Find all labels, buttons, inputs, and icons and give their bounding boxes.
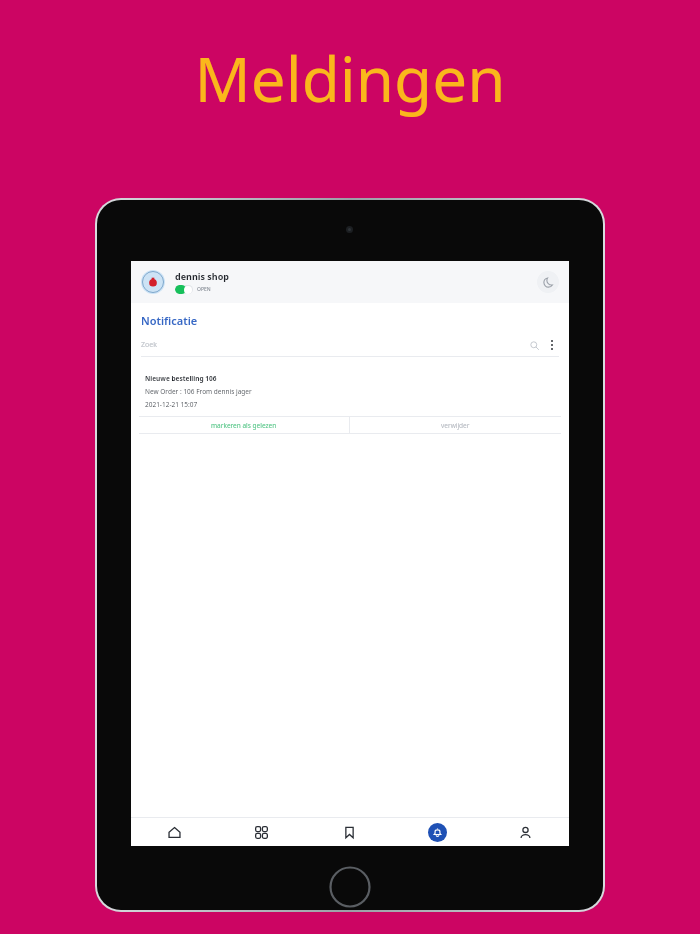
staticText: OPEN [197,286,211,293]
staticText: markeren als gelezen [211,421,277,430]
button[interactable]: More options [545,338,559,352]
button[interactable]: Home [131,818,218,846]
button[interactable]: Notifications [393,818,481,846]
staticText: Notificatie [141,313,198,328]
staticText: Zoek [141,340,157,350]
button[interactable]: Nieuwe bestelling 106 [139,367,561,416]
button[interactable]: verwijder [350,417,561,433]
button[interactable]: markeren als gelezen [139,417,349,433]
staticText: Meldingen [194,36,506,120]
button[interactable]: Profile [481,818,569,846]
button[interactable]: Bookmarks [305,818,393,846]
staticText: dennis shop [175,270,229,282]
staticText: Nieuwe bestelling 106 [145,374,217,383]
button[interactable]: Categories [218,818,305,846]
staticText: verwijder [441,421,470,430]
staticText: 2021-12-21 15:07 [145,400,198,409]
button[interactable]: Search [526,337,542,353]
button[interactable] [175,285,193,294]
button[interactable]: Zoek [141,340,526,350]
staticText: New Order : 106 From dennis jager [145,387,252,396]
button[interactable] [141,270,165,294]
button[interactable]: Dark mode [537,271,559,293]
